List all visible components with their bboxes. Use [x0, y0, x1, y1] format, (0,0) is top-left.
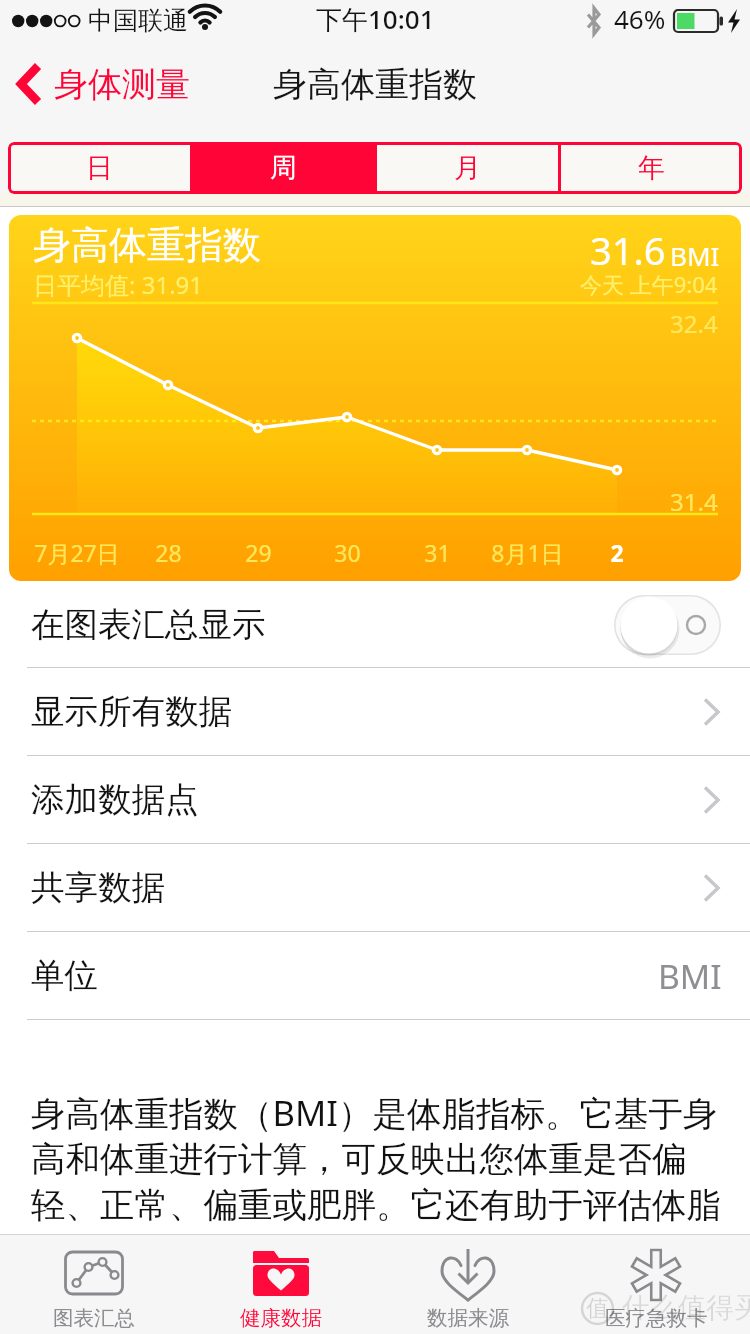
staticText: 月	[454, 151, 481, 185]
staticText: 今天 上午9:04	[580, 269, 718, 299]
staticText: 单位	[31, 955, 98, 997]
button[interactable]: 数据来源	[374, 1234, 562, 1334]
staticText: 身体测量	[54, 63, 190, 106]
button[interactable]: 日	[8, 142, 190, 194]
staticText: 显示所有数据	[31, 691, 232, 733]
staticText: 28	[155, 537, 182, 568]
staticText: 31.6	[590, 224, 666, 276]
staticText: 数据来源	[427, 1305, 509, 1331]
button[interactable]: 月	[377, 142, 558, 194]
button[interactable]: 健康数据	[187, 1234, 374, 1334]
button[interactable]: 在图表汇总显示	[0, 581, 750, 668]
staticText: 30	[334, 537, 361, 568]
staticText: 日平均值: 31.91	[33, 268, 204, 301]
staticText: 中国联通	[88, 5, 188, 36]
staticText: 健康数据	[240, 1305, 322, 1331]
staticText: 2	[610, 537, 624, 568]
button[interactable]: 医疗急救卡	[562, 1234, 750, 1334]
staticText: 日	[86, 151, 113, 185]
staticText: 身高体重指数	[273, 63, 477, 106]
staticText: 32.4	[670, 307, 718, 340]
staticText: 31.4	[670, 485, 718, 518]
staticText: 年	[638, 151, 665, 185]
staticText: 46%	[614, 1, 666, 36]
button[interactable]: 年	[561, 142, 742, 194]
staticText: 31	[424, 537, 451, 568]
button[interactable]: 图表汇总	[0, 1234, 187, 1334]
staticText: 7月27日	[34, 537, 120, 568]
staticText: BMI	[658, 953, 722, 999]
staticText: 值	[586, 1294, 609, 1323]
button[interactable]: 添加数据点	[0, 756, 750, 844]
staticText: 在图表汇总显示	[31, 604, 266, 646]
staticText: 什么值得买	[622, 1290, 750, 1325]
staticText: 身高体重指数	[33, 221, 261, 269]
button[interactable]: 在图表汇总显示开关	[614, 589, 729, 661]
staticText: 添加数据点	[31, 779, 199, 821]
staticText: 周	[270, 151, 297, 185]
button[interactable]: 显示所有数据	[0, 668, 750, 756]
staticText: 图表汇总	[53, 1305, 135, 1331]
staticText: 医疗急救卡	[605, 1305, 708, 1331]
button[interactable]: 单位	[0, 932, 750, 1020]
button[interactable]: 周	[193, 142, 374, 194]
staticText: 29	[245, 537, 272, 568]
button[interactable]: 身体测量	[0, 52, 200, 116]
staticText: 共享数据	[31, 867, 165, 909]
staticText: 下午10:01	[316, 1, 435, 37]
staticText: BMI	[670, 238, 720, 273]
button[interactable]: 共享数据	[0, 844, 750, 932]
staticText: 身高体重指数（BMI）是体脂指标。它基于身高和体重进行计算，可反映出您体重是否偏…	[31, 1089, 731, 1273]
staticText: 8月1日	[491, 537, 564, 568]
